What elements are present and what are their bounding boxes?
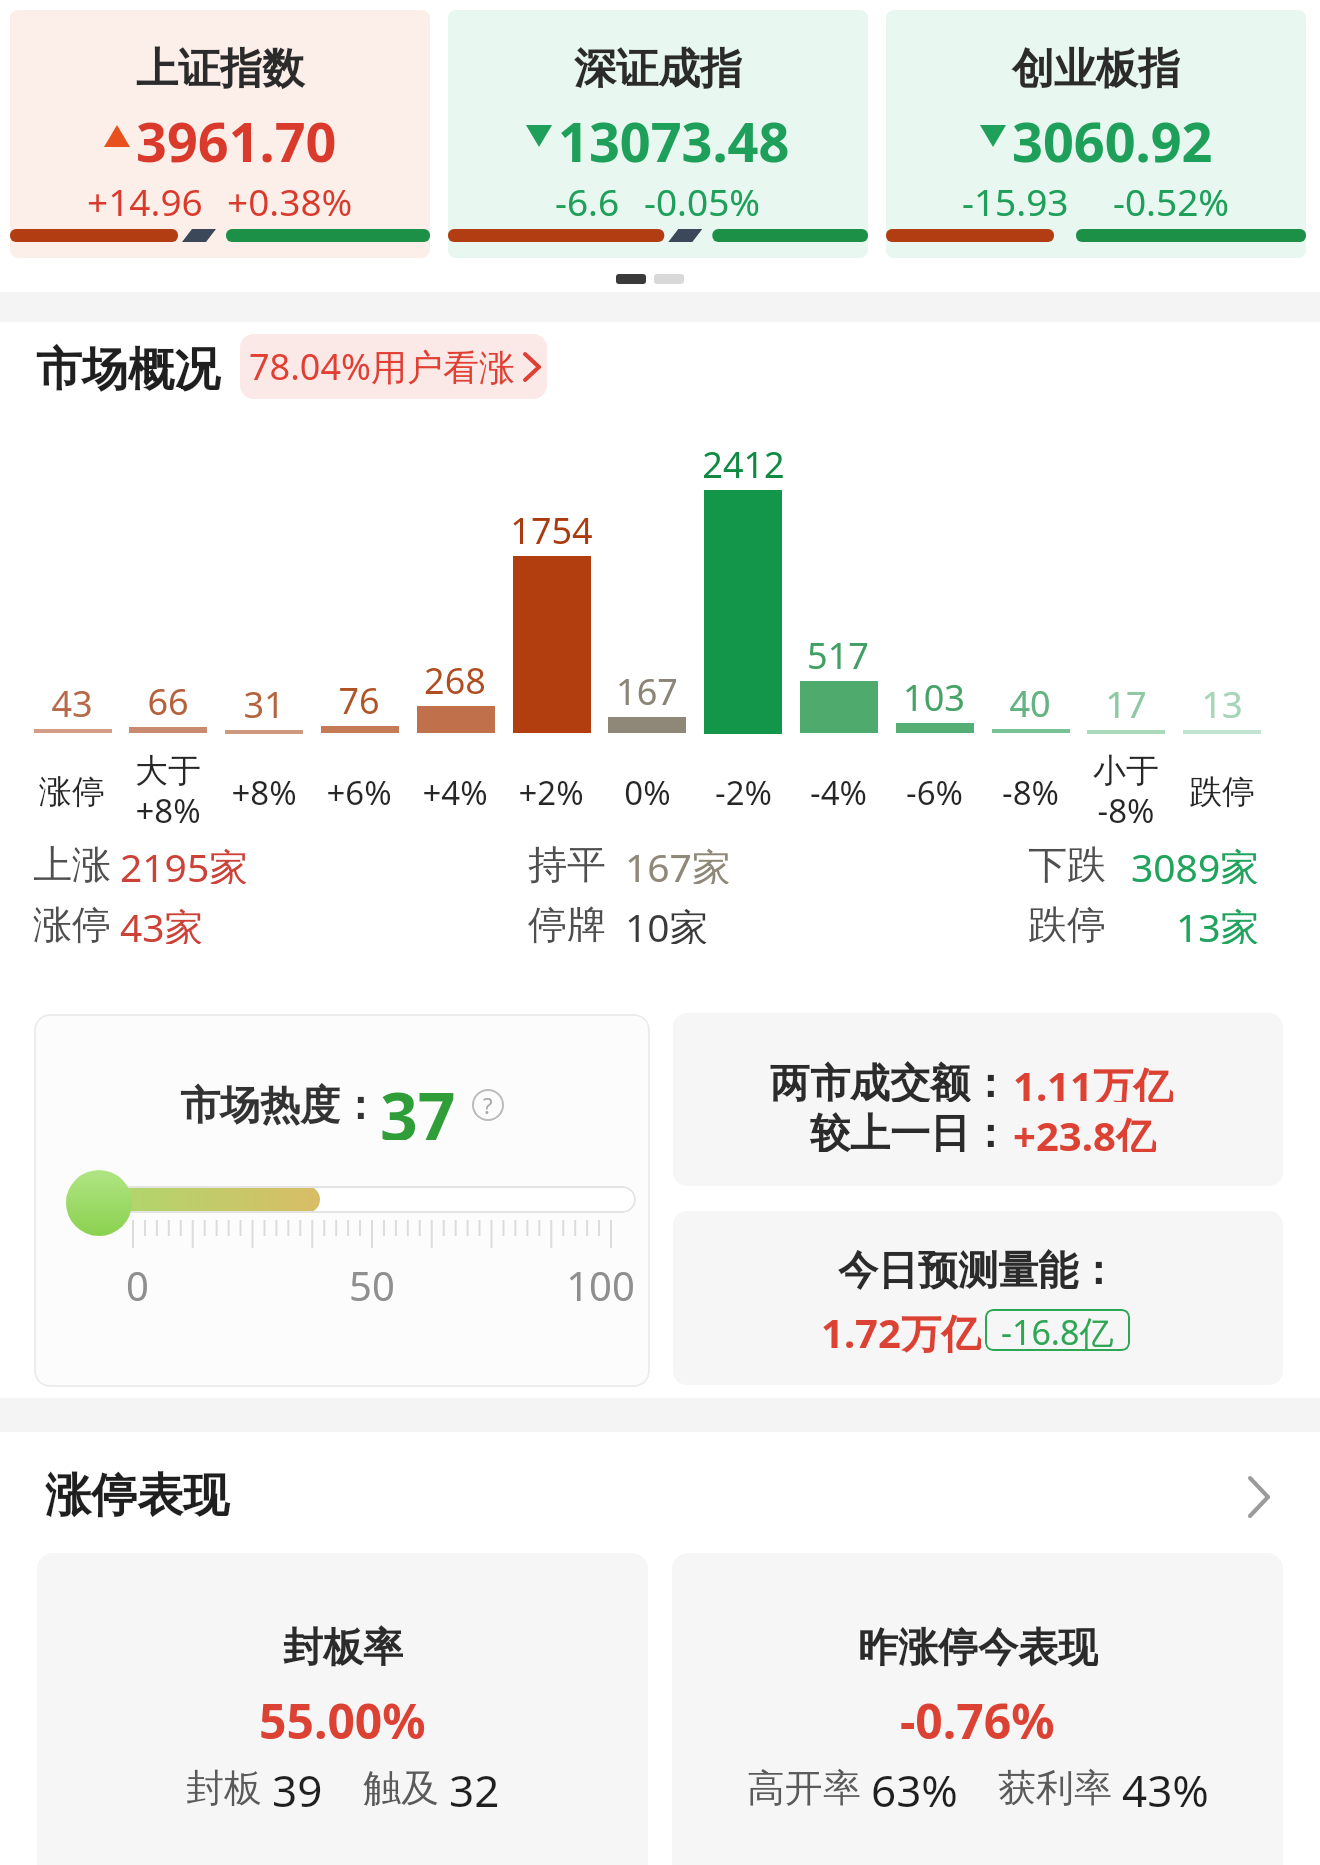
- staticText: -16.8亿: [1001, 1309, 1114, 1351]
- staticText: +0.38%: [227, 176, 353, 216]
- staticText: 2412: [702, 440, 785, 484]
- button[interactable]: 市场热度：: [34, 1014, 650, 1387]
- staticText: +8%: [231, 770, 297, 814]
- button[interactable]: -16.8亿: [985, 1309, 1130, 1351]
- staticText: -0.76%: [900, 1688, 1055, 1742]
- staticText: 517: [807, 631, 869, 675]
- staticText: 55.00%: [259, 1688, 426, 1742]
- staticText: 跌停: [1028, 900, 1106, 944]
- staticText: 停牌: [528, 900, 606, 944]
- staticText: 昨涨停今表现: [858, 1622, 1098, 1670]
- staticText: 涨停: [39, 771, 105, 813]
- staticText: -15.93: [962, 176, 1069, 216]
- staticText: 封板: [186, 1760, 272, 1810]
- staticText: 66: [147, 677, 189, 721]
- staticText: 39: [272, 1760, 323, 1810]
- staticText: +23.8亿: [1013, 1108, 1156, 1152]
- staticText: 涨停表现: [45, 1467, 229, 1525]
- staticText: 17: [1105, 680, 1147, 724]
- button[interactable]: 深证成指: [448, 10, 868, 258]
- staticText: 2195家: [120, 840, 249, 884]
- staticText: +4%: [422, 770, 488, 814]
- button[interactable]: 上证指数: [10, 10, 430, 258]
- staticText: 43家: [120, 900, 204, 944]
- staticText: 100: [566, 1258, 635, 1302]
- button[interactable]: 封板率: [37, 1553, 648, 1865]
- staticText: 3961.70: [136, 104, 337, 168]
- staticText: 13: [1201, 680, 1243, 724]
- staticText: 深证成指: [574, 43, 742, 96]
- staticText: -0.05%: [644, 176, 761, 216]
- staticText: 今日预测量能：: [838, 1245, 1118, 1293]
- button[interactable]: 两市成交额：: [673, 1013, 1283, 1186]
- staticText: 封板率: [283, 1622, 403, 1670]
- staticText: 大于 +8%: [135, 750, 201, 832]
- staticText: 跌停: [1189, 771, 1255, 813]
- staticText: 小于 -8%: [1093, 750, 1159, 832]
- staticText: -6%: [906, 770, 963, 814]
- staticText: 1.11万亿: [1013, 1058, 1173, 1102]
- staticText: 167家: [625, 840, 731, 884]
- staticText: 下跌: [1028, 840, 1106, 884]
- button[interactable]: 创业板指: [886, 10, 1306, 258]
- staticText: 0: [126, 1258, 149, 1302]
- button[interactable]: 涨停表现: [45, 1466, 345, 1526]
- staticText: 3089家: [1131, 840, 1260, 884]
- staticText: 37: [380, 1070, 456, 1140]
- staticText: +14.96: [87, 176, 203, 216]
- button[interactable]: ?: [472, 1089, 504, 1121]
- staticText: 31: [243, 680, 285, 724]
- staticText: 32: [449, 1760, 500, 1810]
- staticText: 76: [338, 676, 380, 720]
- staticText: 涨停: [33, 900, 111, 944]
- staticText: 两市成交额：: [770, 1058, 1010, 1102]
- staticText: 上涨: [33, 840, 111, 884]
- button[interactable]: 78.04%用户看涨: [240, 334, 547, 399]
- staticText: 63%: [871, 1760, 958, 1810]
- staticText: +2%: [518, 770, 584, 814]
- staticText: 市场概况: [36, 341, 220, 399]
- staticText: 1754: [510, 506, 593, 550]
- staticText: 3060.92: [1012, 104, 1213, 168]
- staticText: 40: [1009, 679, 1051, 723]
- staticText: 13073.48: [558, 104, 790, 168]
- staticText: 10家: [625, 900, 709, 944]
- staticText: -8%: [1002, 770, 1059, 814]
- staticText: 268: [424, 656, 486, 700]
- staticText: 创业板指: [1012, 43, 1180, 96]
- staticText: 43: [51, 679, 93, 723]
- staticText: 触及: [363, 1760, 449, 1810]
- staticText: 50: [349, 1258, 395, 1302]
- staticText: -2%: [715, 770, 772, 814]
- staticText: 0%: [624, 770, 671, 814]
- staticText: 高开率: [747, 1760, 871, 1810]
- staticText: ?: [483, 1090, 493, 1120]
- staticText: 上证指数: [136, 43, 304, 96]
- staticText: -6.6: [555, 176, 620, 216]
- staticText: 较上一日：: [810, 1108, 1010, 1152]
- staticText: 167: [616, 667, 678, 711]
- staticText: 78.04%用户看涨: [249, 342, 515, 391]
- staticText: 13家: [1176, 900, 1260, 944]
- button[interactable]: 今日预测量能：: [673, 1211, 1283, 1385]
- staticText: 获利率: [998, 1760, 1122, 1810]
- staticText: 市场热度：: [180, 1080, 380, 1130]
- staticText: +6%: [326, 770, 392, 814]
- staticText: -0.52%: [1113, 176, 1230, 216]
- button[interactable]: 昨涨停今表现: [672, 1553, 1283, 1865]
- staticText: 1.72万亿: [821, 1305, 981, 1353]
- staticText: 43%: [1122, 1760, 1209, 1810]
- staticText: -4%: [810, 770, 867, 814]
- staticText: 持平: [528, 840, 606, 884]
- staticText: 103: [903, 673, 965, 717]
